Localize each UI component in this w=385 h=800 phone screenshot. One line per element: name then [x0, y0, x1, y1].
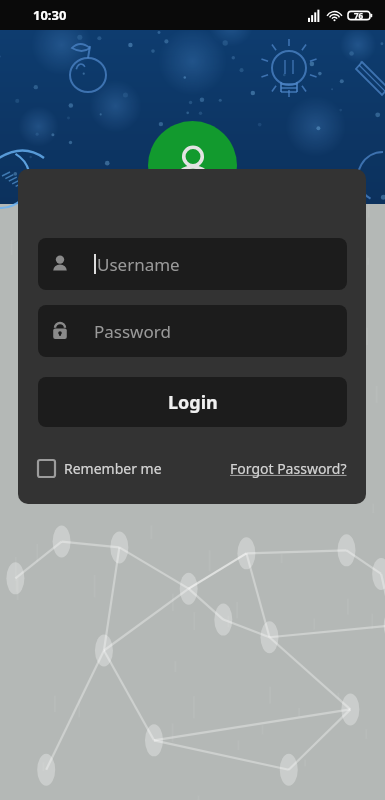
button[interactable]: Forgot Password? [230, 459, 347, 478]
staticText: Username [97, 253, 180, 276]
staticText: Password [94, 320, 171, 343]
staticText: Remember me [64, 459, 162, 478]
staticText: 10:30 [33, 6, 67, 24]
other: Profile avatar [148, 121, 237, 210]
staticText: Login [168, 390, 218, 415]
button[interactable]: Login [38, 377, 347, 427]
button[interactable]: Username [38, 238, 347, 290]
staticText: 76 [354, 10, 364, 21]
button[interactable]: Remember me [38, 459, 162, 478]
staticText: Forgot Password? [230, 459, 347, 478]
button[interactable]: Password [38, 305, 347, 357]
